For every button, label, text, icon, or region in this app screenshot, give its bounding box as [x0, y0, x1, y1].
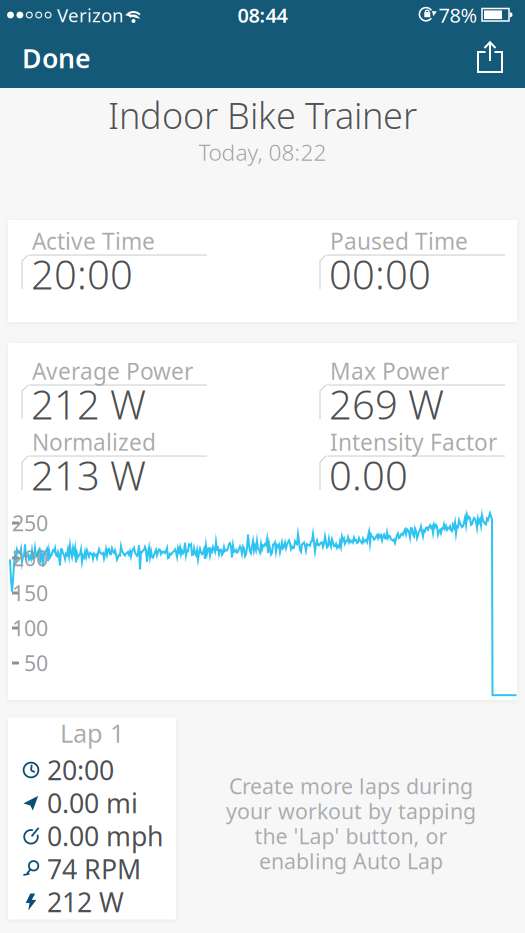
staticText: 0.00 mph: [47, 818, 163, 854]
staticText: the 'Lap' button, or: [254, 822, 447, 850]
staticText: 212 W: [31, 377, 146, 430]
staticText: Active Time: [32, 226, 155, 256]
staticText: enabling Auto Lap: [259, 847, 443, 875]
button[interactable]: Done: [22, 36, 102, 80]
staticText: 0.00 mi: [47, 785, 138, 821]
staticText: 00:00: [329, 247, 431, 300]
staticText: Lap 1: [60, 716, 124, 750]
staticText: 200: [12, 544, 48, 572]
staticText: 250: [12, 509, 48, 537]
staticText: Today, 08:22: [198, 137, 326, 167]
staticText: 213 W: [31, 448, 146, 501]
staticText: 20:00: [47, 752, 114, 788]
staticText: 74 RPM: [47, 851, 141, 887]
staticText: 78%: [438, 2, 477, 28]
staticText: 0.00: [329, 448, 408, 501]
staticText: Create more laps during: [229, 772, 473, 800]
staticText: 150: [12, 579, 48, 607]
staticText: Done: [22, 40, 91, 76]
staticText: Average Power: [32, 356, 193, 386]
staticText: 08:44: [237, 2, 287, 28]
staticText: Paused Time: [330, 226, 468, 256]
staticText: 20:00: [31, 247, 133, 300]
staticText: Normalized: [32, 427, 156, 457]
staticText: 50: [24, 649, 48, 677]
staticText: 212 W: [47, 884, 124, 920]
staticText: 269 W: [329, 377, 444, 430]
staticText: your workout by tapping: [226, 797, 476, 825]
staticText: Indoor Bike Trainer: [108, 91, 417, 139]
staticText: 100: [12, 614, 48, 642]
staticText: Verizon: [57, 3, 124, 27]
staticText: Max Power: [330, 356, 449, 386]
button[interactable]: Share: [468, 35, 512, 79]
staticText: Intensity Factor: [330, 427, 497, 457]
